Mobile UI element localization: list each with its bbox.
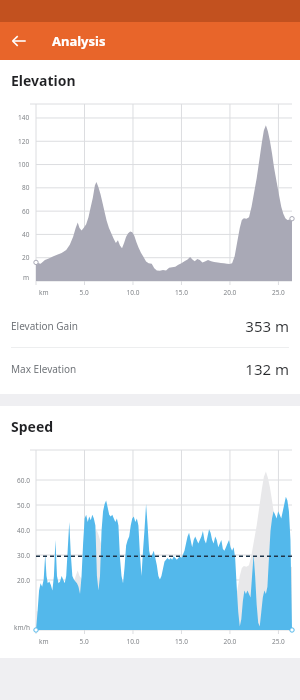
staticText: 353 m xyxy=(245,316,289,336)
button[interactable]: Elevation Gain xyxy=(0,305,300,347)
button[interactable]: Back xyxy=(0,22,38,60)
staticText: 132 m xyxy=(245,359,289,379)
button[interactable]: Max Elevation xyxy=(0,348,300,390)
staticText: Max Elevation xyxy=(11,362,77,376)
staticText: Analysis xyxy=(52,32,106,50)
staticText: Speed xyxy=(11,417,54,436)
staticText: Elevation xyxy=(11,71,76,90)
staticText: Elevation Gain xyxy=(11,319,78,333)
